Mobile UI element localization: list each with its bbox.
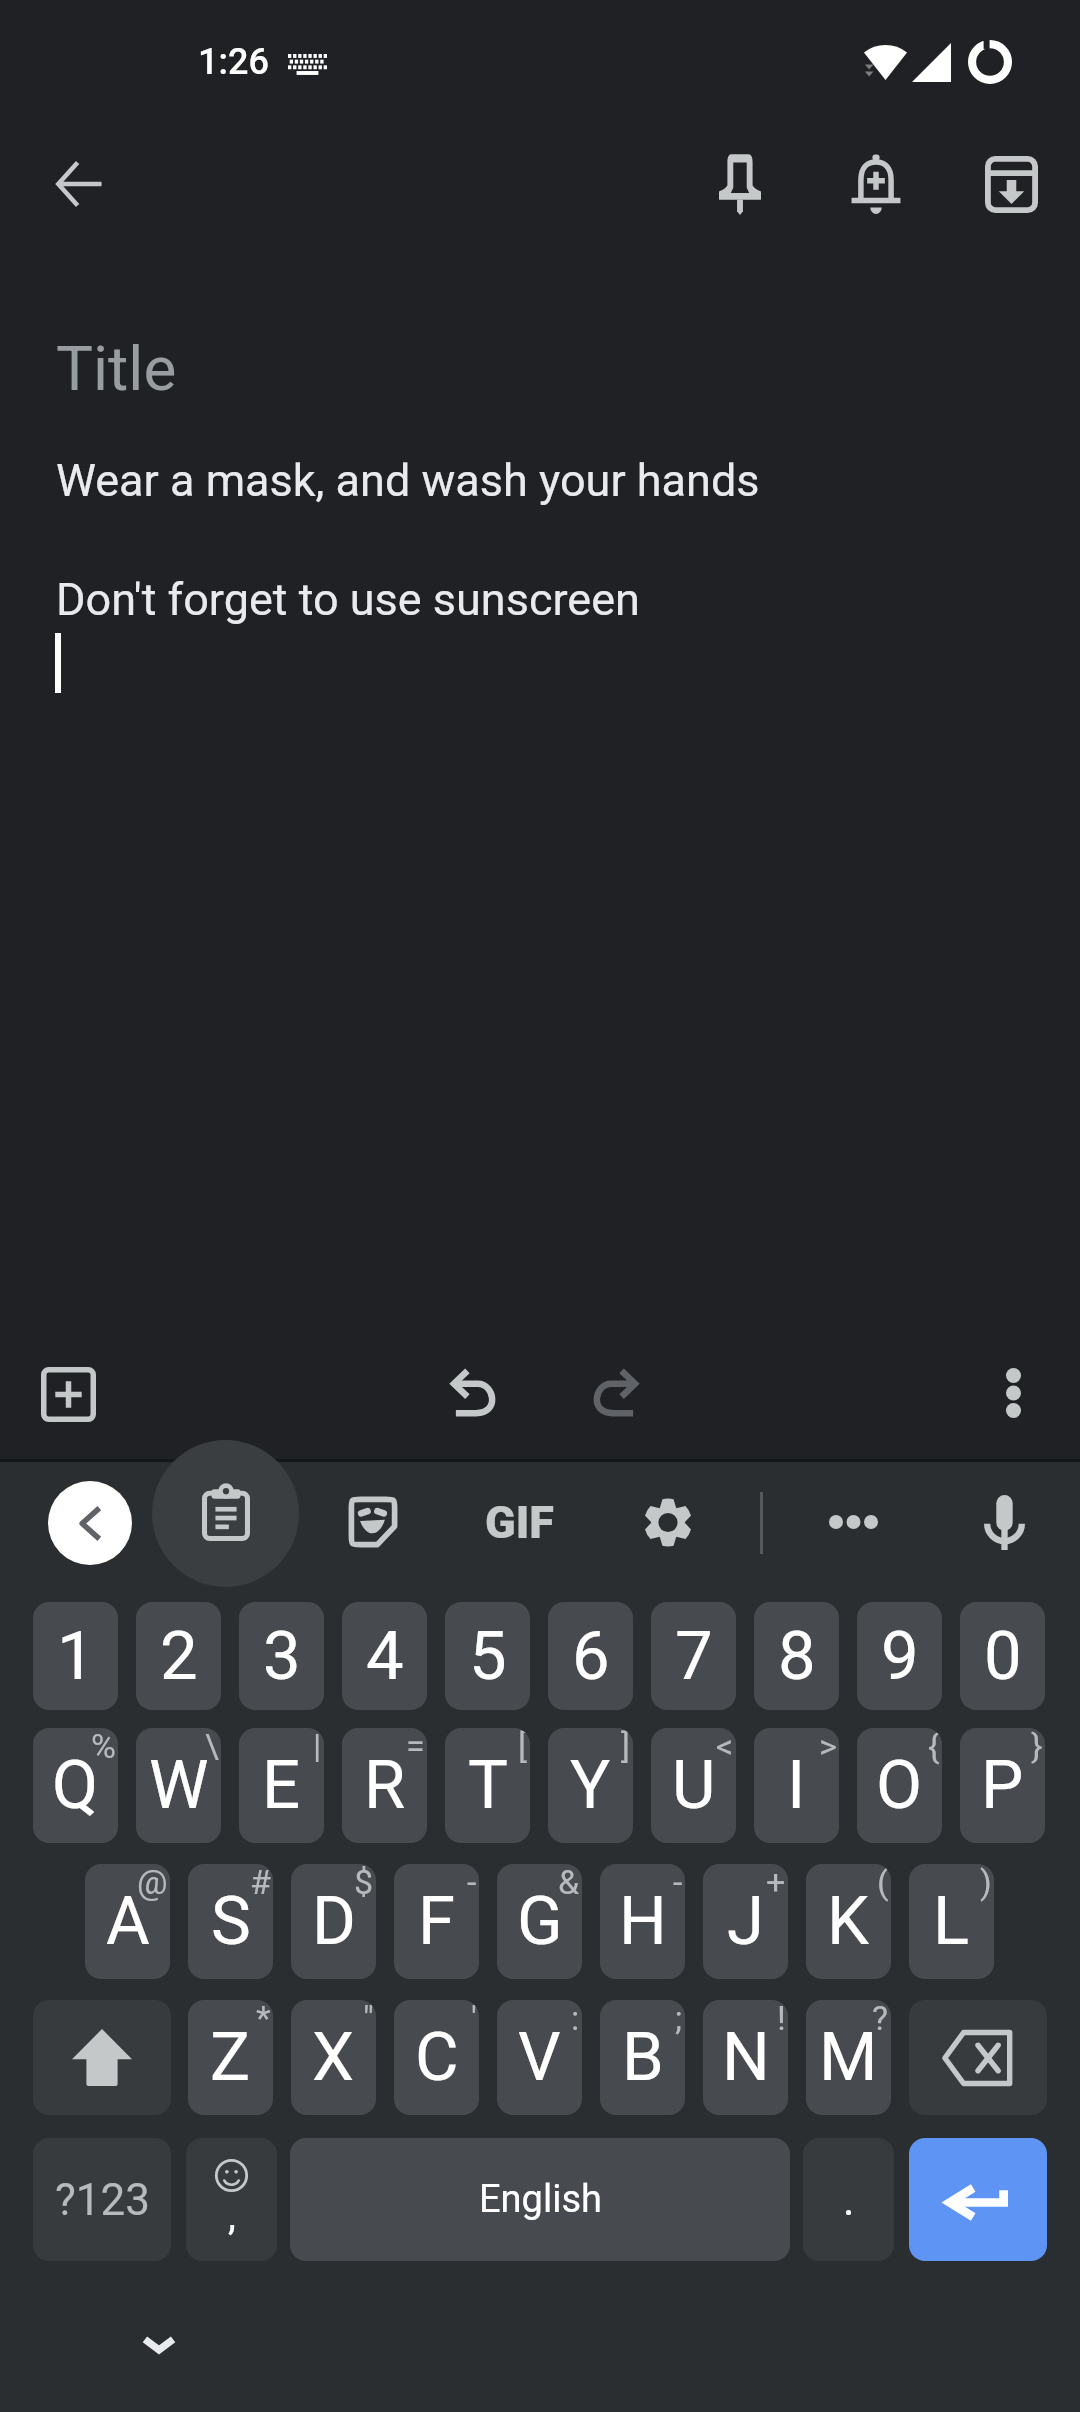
button[interactable]: =	[342, 1728, 427, 1843]
staticText: *	[256, 2000, 271, 2038]
button[interactable]: Undo	[427, 1342, 527, 1442]
staticText: G	[517, 1882, 563, 1961]
staticText: Don't forget to use sunscreen	[56, 573, 1080, 626]
button[interactable]: -	[600, 1864, 685, 1979]
button[interactable]: More options	[963, 1343, 1063, 1443]
staticText: E	[262, 1746, 301, 1825]
button[interactable]: :	[497, 2000, 582, 2115]
staticText: 4	[366, 1617, 404, 1696]
staticText: $	[354, 1864, 374, 1902]
button[interactable]: (	[806, 1864, 891, 1979]
staticText: 2	[160, 1617, 198, 1696]
button[interactable]: ;	[600, 2000, 685, 2115]
staticText: %	[91, 1728, 116, 1766]
staticText: &	[558, 1864, 580, 1902]
button[interactable]: -	[394, 1864, 479, 1979]
staticText: 8	[778, 1617, 816, 1696]
button[interactable]: 5	[445, 1602, 530, 1710]
staticText: H	[619, 1882, 667, 1961]
staticText: V	[518, 2018, 561, 2097]
staticText: C	[415, 2018, 459, 2097]
button[interactable]: +	[703, 1864, 788, 1979]
staticText: !	[777, 2000, 786, 2038]
button[interactable]: 9	[857, 1602, 942, 1710]
staticText: :	[571, 2000, 580, 2038]
staticText: 3	[263, 1617, 301, 1696]
button[interactable]: Navigate up	[29, 134, 129, 234]
button[interactable]: 0	[960, 1602, 1045, 1710]
button[interactable]: 4	[342, 1602, 427, 1710]
button[interactable]: .	[803, 2138, 894, 2261]
button[interactable]: Pin note	[690, 134, 790, 234]
button[interactable]: Emoji	[186, 2138, 277, 2261]
button[interactable]: {	[857, 1728, 942, 1843]
button[interactable]: 8	[754, 1602, 839, 1710]
button[interactable]: English	[290, 2138, 790, 2261]
staticText: ,	[228, 2192, 236, 2239]
button[interactable]: !	[703, 2000, 788, 2115]
button[interactable]: Stickers	[318, 1467, 428, 1577]
staticText: #	[250, 1864, 271, 1902]
staticText: >	[819, 1728, 837, 1766]
button[interactable]: 6	[548, 1602, 633, 1710]
button[interactable]: Remind me	[826, 134, 926, 234]
button[interactable]: >	[754, 1728, 839, 1843]
staticText: M	[819, 2018, 878, 2097]
staticText: [	[518, 1728, 528, 1766]
button[interactable]: 1	[33, 1602, 118, 1710]
button[interactable]: )	[909, 1864, 994, 1979]
button[interactable]: More keyboard options	[798, 1467, 908, 1577]
button[interactable]: @	[85, 1864, 170, 1979]
button[interactable]: Add	[18, 1344, 118, 1444]
button[interactable]: '	[394, 2000, 479, 2115]
staticText: B	[622, 2018, 664, 2097]
button[interactable]: Archive	[961, 134, 1061, 234]
button[interactable]: Shift	[33, 2000, 171, 2115]
staticText: '	[471, 2000, 477, 2038]
staticText: Z	[210, 2018, 251, 2097]
button[interactable]: Hide keyboard	[119, 2304, 199, 2384]
button[interactable]: 2	[136, 1602, 221, 1710]
staticText: (	[877, 1864, 889, 1902]
staticText: +	[766, 1864, 786, 1902]
button[interactable]: }	[960, 1728, 1045, 1843]
staticText: A	[106, 1882, 150, 1961]
staticText: 6	[572, 1617, 610, 1696]
button[interactable]: |	[239, 1728, 324, 1843]
button[interactable]: Clipboard	[152, 1440, 299, 1587]
button[interactable]: [	[445, 1728, 530, 1843]
staticText: -	[467, 1864, 477, 1902]
button[interactable]: Settings	[613, 1467, 723, 1577]
button[interactable]: &	[497, 1864, 582, 1979]
button[interactable]: Enter	[909, 2138, 1047, 2261]
button[interactable]: $	[291, 1864, 376, 1979]
staticText: X	[312, 2018, 355, 2097]
button[interactable]: %	[33, 1728, 118, 1843]
staticText: L	[933, 1882, 970, 1961]
staticText: Q	[52, 1746, 99, 1825]
staticText: 7	[675, 1617, 713, 1696]
button[interactable]: *	[188, 2000, 273, 2115]
staticText: 0	[984, 1617, 1022, 1696]
staticText: }	[1031, 1728, 1043, 1766]
button[interactable]: ?	[806, 2000, 891, 2115]
staticText: O	[876, 1746, 923, 1825]
staticText: ;	[675, 2000, 683, 2038]
button[interactable]: Redo	[562, 1342, 662, 1442]
staticText: Wear a mask, and wash your hands	[56, 454, 1080, 507]
button[interactable]: 3	[239, 1602, 324, 1710]
button[interactable]: Backspace	[909, 2000, 1047, 2115]
button[interactable]: Voice input	[949, 1467, 1059, 1577]
button[interactable]: <	[651, 1728, 736, 1843]
button[interactable]: #	[188, 1864, 273, 1979]
button[interactable]: Back	[48, 1481, 132, 1565]
staticText: ?123	[55, 2174, 150, 2226]
button[interactable]: \	[136, 1728, 221, 1843]
button[interactable]: "	[291, 2000, 376, 2115]
button[interactable]: ?123	[33, 2138, 171, 2261]
button[interactable]: 7	[651, 1602, 736, 1710]
button[interactable]: GIF	[464, 1467, 574, 1577]
staticText: U	[672, 1746, 716, 1825]
button[interactable]: ]	[548, 1728, 633, 1843]
staticText: |	[313, 1728, 322, 1766]
